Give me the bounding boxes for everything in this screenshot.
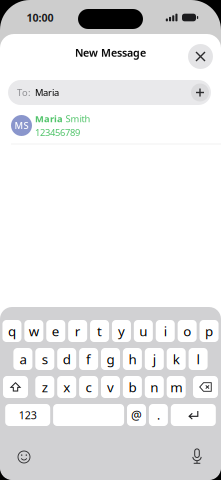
- button[interactable]: v: [101, 376, 120, 398]
- staticText: l: [197, 350, 200, 368]
- staticText: 10:00: [26, 10, 53, 25]
- button[interactable]: p: [200, 320, 219, 342]
- button[interactable]: r: [68, 320, 87, 342]
- button[interactable]: Add contact: [189, 81, 211, 103]
- staticText: z: [42, 378, 48, 396]
- button[interactable]: k: [167, 348, 186, 370]
- staticText: h: [128, 350, 136, 368]
- staticText: o: [183, 322, 191, 340]
- staticText: New Message: [75, 45, 146, 60]
- button[interactable]: t: [90, 320, 109, 342]
- button[interactable]: .: [149, 404, 168, 426]
- button[interactable]: j: [145, 348, 164, 370]
- staticText: Maria: [35, 112, 63, 125]
- staticText: m: [170, 378, 182, 396]
- button[interactable]: Return: [171, 404, 216, 426]
- button[interactable]: b: [123, 376, 142, 398]
- staticText: f: [86, 350, 91, 368]
- button[interactable]: x: [57, 376, 76, 398]
- staticText: n: [150, 378, 158, 396]
- staticText: e: [52, 322, 60, 340]
- staticText: q: [8, 322, 16, 340]
- staticText: @: [131, 407, 142, 423]
- staticText: a: [19, 350, 26, 368]
- staticText: Smith: [65, 112, 90, 125]
- button[interactable]: MS: [0, 108, 221, 142]
- staticText: s: [42, 350, 48, 368]
- button[interactable]: f: [79, 348, 98, 370]
- button[interactable]: 123: [5, 404, 50, 426]
- staticText: d: [63, 350, 71, 368]
- button[interactable]: z: [35, 376, 54, 398]
- staticText: j: [153, 350, 156, 368]
- button[interactable]: Delete: [193, 376, 218, 398]
- button[interactable]: a: [13, 348, 32, 370]
- button[interactable]: s: [35, 348, 54, 370]
- staticText: MS: [14, 119, 28, 132]
- button[interactable]: @: [127, 404, 146, 426]
- staticText: y: [118, 322, 125, 340]
- staticText: g: [106, 350, 114, 368]
- button[interactable]: Shift: [3, 376, 28, 398]
- button[interactable]: o: [178, 320, 197, 342]
- staticText: v: [107, 378, 114, 396]
- button[interactable]: u: [134, 320, 153, 342]
- button[interactable]: q: [2, 320, 21, 342]
- button[interactable]: Emoji: [13, 446, 35, 468]
- button[interactable]: Space: [53, 404, 124, 426]
- button[interactable]: Close: [186, 42, 214, 70]
- button[interactable]: c: [79, 376, 98, 398]
- staticText: t: [97, 322, 102, 340]
- staticText: p: [205, 322, 213, 340]
- button[interactable]: d: [57, 348, 76, 370]
- button[interactable]: m: [167, 376, 186, 398]
- staticText: c: [86, 378, 92, 396]
- button[interactable]: e: [46, 320, 65, 342]
- button[interactable]: Dictation: [186, 445, 208, 467]
- staticText: w: [29, 322, 39, 340]
- button[interactable]: y: [112, 320, 131, 342]
- staticText: Maria: [35, 86, 59, 99]
- button[interactable]: w: [24, 320, 43, 342]
- button[interactable]: i: [156, 320, 175, 342]
- staticText: k: [173, 350, 180, 368]
- button[interactable]: h: [123, 348, 142, 370]
- staticText: To:: [17, 86, 31, 99]
- staticText: x: [63, 378, 70, 396]
- staticText: 123456789: [35, 126, 80, 139]
- staticText: 123: [19, 408, 37, 422]
- staticText: b: [128, 378, 136, 396]
- staticText: u: [139, 322, 147, 340]
- button[interactable]: g: [101, 348, 120, 370]
- staticText: r: [75, 322, 81, 340]
- button[interactable]: l: [189, 348, 208, 370]
- staticText: i: [164, 322, 167, 340]
- staticText: .: [157, 407, 160, 423]
- button[interactable]: n: [145, 376, 164, 398]
